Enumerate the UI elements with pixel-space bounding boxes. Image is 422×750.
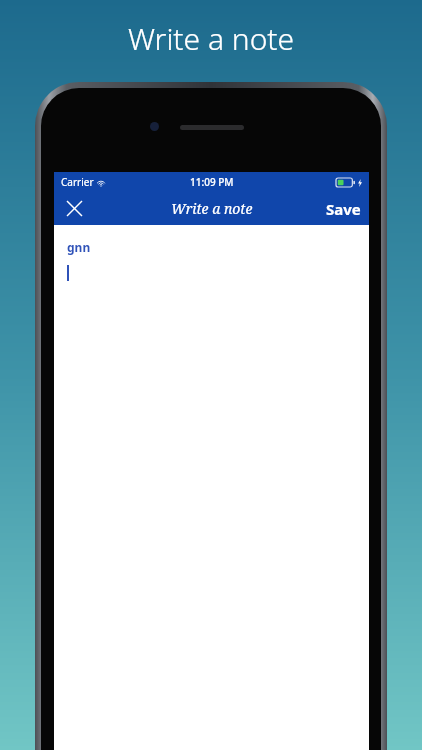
staticText: Write a note xyxy=(171,199,253,218)
button[interactable]: Save xyxy=(326,192,361,225)
staticText: Carrier xyxy=(61,175,94,189)
staticText: Save xyxy=(326,199,361,219)
staticText: 11:09 PM xyxy=(190,175,234,189)
staticText: gnn xyxy=(67,239,91,255)
staticText: Write a note xyxy=(0,18,422,59)
button[interactable]: gnn xyxy=(54,225,369,750)
button[interactable]: Close xyxy=(54,192,94,225)
